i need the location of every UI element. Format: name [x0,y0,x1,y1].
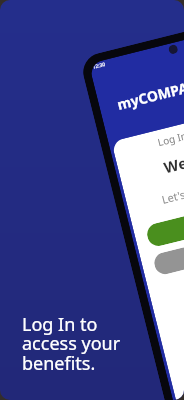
staticText: Log In [156,128,184,149]
staticText: Let's get started [160,172,184,207]
staticText: myCOMPANY [115,73,184,114]
button[interactable] [152,221,184,276]
staticText: Log In to access your benefits. [22,312,121,376]
other: Front camera [168,44,179,55]
staticText: 12:30 [92,61,106,71]
button[interactable] [145,192,184,248]
staticText: Welcome [162,141,184,177]
